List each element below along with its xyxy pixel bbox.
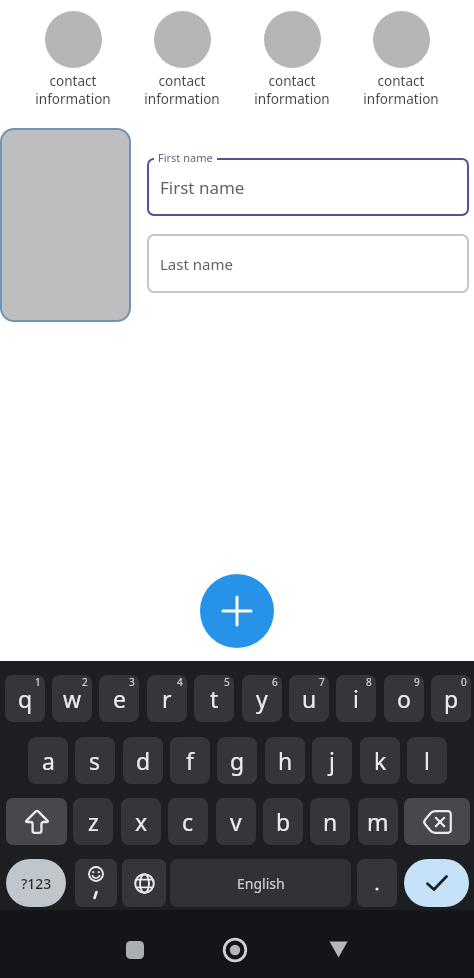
staticText: d [136,745,151,776]
staticText: 6 [272,675,278,689]
button[interactable]: n [310,798,350,845]
staticText: Last name [160,254,233,274]
button[interactable] [404,798,470,845]
staticText: m [367,806,389,837]
staticText: k [374,745,387,776]
staticText: 7 [319,675,325,689]
staticText: f [186,745,194,776]
button[interactable]: c [168,798,208,845]
staticText: c [182,806,194,837]
button[interactable]: b [263,798,303,845]
button[interactable]: s [75,737,115,784]
staticText: First name [158,150,213,165]
staticText: contact information [144,72,220,108]
staticText: 3 [129,675,135,689]
button[interactable]: contact information [18,11,128,108]
button[interactable]: contact information [127,11,237,108]
staticText: o [397,683,411,714]
button[interactable]: l [407,737,447,784]
staticText: i [353,683,359,714]
staticText: n [323,806,338,837]
button[interactable]: j [312,737,352,784]
button[interactable]: contact information [346,11,456,108]
button[interactable]: p [431,675,471,722]
button[interactable]: English [170,859,351,907]
staticText: h [278,745,293,776]
staticText: u [302,683,317,714]
button[interactable] [357,859,397,907]
staticText: 0 [461,675,467,689]
button[interactable] [404,859,469,907]
staticText: contact information [254,72,330,108]
staticText: w [63,683,82,714]
button[interactable] [126,941,144,959]
button[interactable] [6,798,67,845]
button[interactable]: t [194,675,234,722]
button[interactable]: h [265,737,305,784]
button[interactable]: g [217,737,257,784]
button[interactable]: Last name [147,234,469,293]
staticText: a [42,745,55,776]
staticText: s [89,745,101,776]
staticText: 2 [82,675,88,689]
button[interactable]: k [360,737,400,784]
staticText: l [424,745,430,776]
staticText: q [18,683,33,714]
staticText: e [113,683,126,714]
staticText: 5 [224,675,230,689]
staticText: y [256,683,268,714]
staticText: First name [160,176,245,199]
button[interactable]: d [123,737,163,784]
staticText: English [237,874,285,893]
staticText: p [444,683,459,714]
staticText: v [230,806,242,837]
staticText: 4 [177,675,183,689]
staticText: 9 [414,675,420,689]
button[interactable] [200,574,274,648]
button[interactable]: contact information [237,11,347,108]
staticText: t [210,683,219,714]
button[interactable]: u [289,675,329,722]
staticText: x [135,806,148,837]
button[interactable] [329,941,348,958]
button[interactable]: First name [147,158,469,216]
staticText: contact information [363,72,439,108]
button[interactable] [0,128,131,322]
button[interactable]: w [52,675,92,722]
button[interactable]: y [242,675,282,722]
button[interactable]: ?123 [6,859,66,907]
staticText: 8 [366,675,372,689]
button[interactable]: v [216,798,256,845]
staticText: r [162,683,172,714]
button[interactable] [222,937,248,963]
staticText: b [276,806,291,837]
button[interactable]: m [358,798,398,845]
button[interactable]: z [73,798,113,845]
staticText: j [329,745,335,776]
button[interactable] [122,859,166,907]
staticText: g [230,745,245,776]
button[interactable]: i [336,675,376,722]
button[interactable]: r [147,675,187,722]
button[interactable]: e [99,675,139,722]
button[interactable] [75,859,117,907]
button[interactable]: o [384,675,424,722]
staticText: ?123 [21,874,52,893]
button[interactable]: f [170,737,210,784]
staticText: contact information [35,72,111,108]
staticText: 1 [35,675,41,689]
button[interactable]: x [121,798,161,845]
staticText: z [88,806,99,837]
button[interactable]: a [28,737,68,784]
button[interactable]: q [5,675,45,722]
